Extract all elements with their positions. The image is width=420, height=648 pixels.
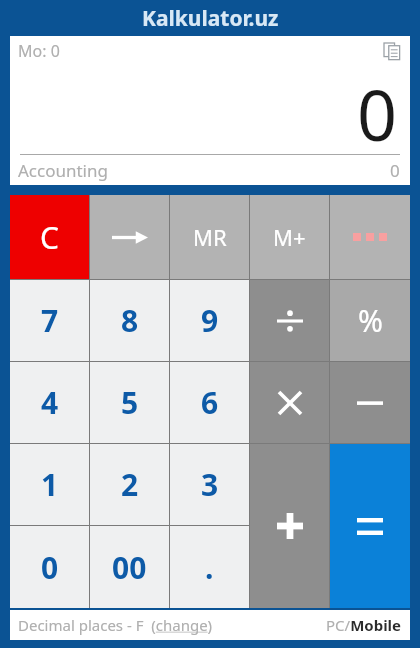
staticText: 9: [201, 300, 219, 341]
staticText: Decimal places - F (change): [18, 615, 213, 635]
button[interactable]: Copy: [382, 41, 402, 61]
button[interactable]: Multiply: [250, 362, 329, 443]
staticText: 7: [41, 300, 59, 341]
button[interactable]: 9: [170, 280, 249, 361]
staticText: Mo: 0: [18, 40, 60, 62]
button[interactable]: Memory recall: [170, 195, 249, 279]
staticText: 3: [201, 464, 219, 505]
staticText: MR: [193, 222, 227, 252]
button[interactable]: 3: [170, 444, 249, 525]
staticText: Accounting: [18, 159, 108, 182]
button[interactable]: Decimal places - F (change): [18, 615, 213, 635]
staticText: 6: [201, 382, 219, 423]
staticText: .: [205, 547, 214, 588]
staticText: 0: [41, 547, 59, 588]
button[interactable]: PC/Mobile: [326, 615, 402, 635]
button[interactable]: 2: [90, 444, 169, 525]
staticText: PC/Mobile: [326, 615, 402, 635]
staticText: 5: [121, 382, 139, 423]
button[interactable]: 8: [90, 280, 169, 361]
button[interactable]: 5: [90, 362, 169, 443]
button[interactable]: Add: [250, 444, 329, 608]
staticText: C: [40, 217, 59, 258]
staticText: 1: [41, 464, 59, 505]
button[interactable]: 00: [90, 526, 169, 608]
staticText: 0: [357, 66, 398, 150]
button[interactable]: 0: [10, 526, 89, 608]
button[interactable]: Subtract: [330, 362, 410, 443]
button[interactable]: Backspace: [90, 195, 169, 279]
staticText: Kalkulator.uz: [142, 4, 279, 33]
staticText: 2: [121, 464, 139, 505]
button[interactable]: 1: [10, 444, 89, 525]
staticText: 0: [390, 159, 400, 182]
button[interactable]: 6: [170, 362, 249, 443]
button[interactable]: Percent: [330, 280, 410, 361]
staticText: 4: [41, 382, 59, 423]
button[interactable]: More options: [330, 195, 410, 279]
staticText: M+: [273, 222, 306, 252]
button[interactable]: Clear: [10, 195, 89, 279]
button[interactable]: Divide: [250, 280, 329, 361]
staticText: 8: [121, 300, 139, 341]
button[interactable]: Memory add: [250, 195, 329, 279]
button[interactable]: Equals: [330, 444, 410, 608]
button[interactable]: 7: [10, 280, 89, 361]
staticText: 00: [112, 547, 147, 588]
button[interactable]: Decimal point: [170, 526, 249, 608]
button[interactable]: 4: [10, 362, 89, 443]
staticText: %: [358, 300, 383, 341]
